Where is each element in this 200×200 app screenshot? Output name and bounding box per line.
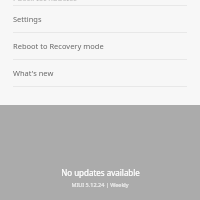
staticText: What's new — [13, 68, 54, 78]
staticText: Check for updates — [13, 0, 77, 1]
staticText: MIUI 5.12.24 | Weekly — [71, 181, 129, 188]
button[interactable]: Reboot to Recovery mode — [0, 33, 200, 59]
button[interactable]: What's new — [0, 60, 200, 86]
button[interactable]: Check for updates — [0, 0, 200, 5]
staticText: Reboot to Recovery mode — [13, 41, 104, 51]
staticText: Settings — [13, 14, 42, 24]
button[interactable]: Settings — [0, 6, 200, 32]
staticText: No updates available — [61, 167, 140, 178]
